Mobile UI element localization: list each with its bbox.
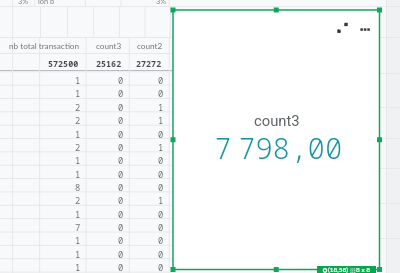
staticText: 0 [158, 169, 164, 181]
staticText: 1 [75, 155, 81, 167]
staticText: 2 [75, 102, 81, 114]
button[interactable]: Expand chart [334, 12, 354, 38]
staticText: 1 [75, 262, 81, 273]
staticText: 0 [158, 249, 164, 261]
staticText: 1 [158, 102, 164, 114]
staticText: 7 [214, 128, 232, 167]
staticText: 0 [118, 182, 124, 194]
staticText: 0 [118, 195, 124, 207]
staticText: 0 [118, 142, 124, 154]
staticText: 0 [118, 169, 124, 181]
staticText: 1 [75, 88, 81, 100]
staticText: 2 [75, 142, 81, 154]
staticText: 0 [158, 235, 164, 247]
staticText: lon b [38, 0, 55, 6]
staticText: 0 [158, 209, 164, 221]
staticText: 27272 [136, 58, 162, 69]
staticText: count3 [254, 112, 300, 129]
staticText: 0 [118, 88, 124, 100]
staticText: 0 [118, 209, 124, 221]
staticText: 0 [158, 222, 164, 234]
staticText: 8 x 8 [356, 266, 371, 273]
staticText: 2 [75, 195, 81, 207]
staticText: 7 [75, 222, 81, 234]
staticText: 0 [118, 129, 124, 141]
staticText: 0 [118, 155, 124, 167]
staticText: 0 [118, 102, 124, 114]
staticText: count2 [137, 41, 163, 51]
staticText: 1 [75, 169, 81, 181]
button[interactable]: Expand chart [173, 10, 380, 270]
staticText: 2 [75, 115, 81, 127]
staticText: 0 [158, 262, 164, 273]
staticText: 0 [118, 75, 124, 87]
staticText: 0 [118, 222, 124, 234]
staticText: 1 [75, 249, 81, 261]
button[interactable]: (18,58) [317, 266, 376, 273]
staticText: 0 [158, 155, 164, 167]
staticText: 1 [75, 129, 81, 141]
staticText: 0 [158, 182, 164, 194]
staticText: 0 [158, 129, 164, 141]
staticText: 0 [118, 235, 124, 247]
staticText: 1 [158, 115, 164, 127]
staticText: 25162 [96, 58, 122, 69]
button[interactable]: More options [357, 19, 379, 40]
staticText: 1 [75, 209, 81, 221]
staticText: 572500 [48, 58, 79, 69]
staticText: 0 [158, 88, 164, 100]
staticText: 8 [75, 182, 81, 194]
staticText: 0 [118, 262, 124, 273]
staticText: 798,00 [238, 128, 343, 167]
staticText: 3% [156, 0, 167, 6]
staticText: 1 [75, 235, 81, 247]
staticText: 0 [158, 75, 164, 87]
staticText: (18,58) [328, 266, 349, 273]
staticText: 0 [118, 249, 124, 261]
staticText: 3% [18, 0, 29, 6]
staticText: 1 [75, 75, 81, 87]
staticText: nb total transaction [9, 41, 80, 51]
staticText: 1 [158, 142, 164, 154]
staticText: 0 [118, 115, 124, 127]
staticText: count3 [96, 41, 122, 51]
staticText: 1 [158, 195, 164, 207]
